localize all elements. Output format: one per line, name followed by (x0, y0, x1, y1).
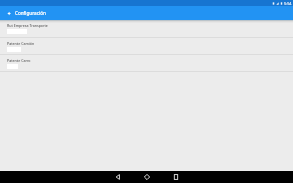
button[interactable]: Patente Camión (0, 38, 293, 54)
staticText: Patente Carro (7, 58, 31, 63)
staticText: Patente Camión (7, 41, 35, 46)
staticText: Rut Empresa Transporte (7, 23, 48, 28)
button[interactable]: Back (0, 6, 13, 20)
button[interactable]: Patente Carro (0, 55, 293, 71)
button[interactable]: Rut Empresa Transporte (0, 20, 293, 37)
button[interactable]: Back (112, 171, 124, 183)
staticText: Configuración (15, 10, 46, 16)
button[interactable]: Home (141, 171, 153, 183)
button[interactable]: Recent apps (170, 171, 182, 183)
staticText: 5:54 (284, 1, 292, 6)
